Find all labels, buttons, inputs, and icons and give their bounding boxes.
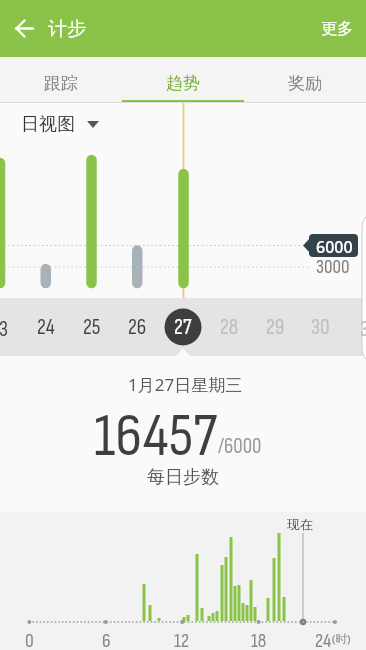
- staticText: 每日步数: [147, 466, 219, 489]
- staticText: 趋势: [166, 73, 200, 94]
- staticText: 3: [0, 317, 8, 339]
- staticText: 25: [83, 315, 101, 341]
- staticText: 3: [360, 317, 366, 339]
- staticText: 更多: [321, 19, 353, 39]
- button[interactable]: 跟踪: [0, 57, 122, 103]
- staticText: 24: [37, 315, 55, 341]
- staticText: 30: [311, 315, 330, 341]
- staticText: 27: [174, 315, 192, 341]
- staticText: 18: [251, 629, 267, 649]
- button[interactable]: 29: [255, 308, 295, 348]
- staticText: 12: [174, 629, 190, 649]
- button[interactable]: 30: [300, 308, 340, 348]
- button[interactable]: 日视图: [11, 107, 109, 142]
- staticText: 16457: [94, 400, 218, 473]
- staticText: 奖励: [288, 73, 322, 94]
- staticText: (时): [332, 631, 351, 647]
- button[interactable]: 趋势: [122, 57, 244, 103]
- staticText: 0: [25, 629, 34, 649]
- staticText: 24: [315, 629, 332, 649]
- button[interactable]: [0, 0, 48, 57]
- staticText: 29: [266, 315, 285, 341]
- button[interactable]: 更多: [308, 0, 366, 57]
- staticText: 6000: [316, 236, 353, 256]
- button[interactable]: 25: [72, 308, 112, 348]
- staticText: 现在: [287, 516, 313, 532]
- staticText: /6000: [218, 434, 262, 459]
- button[interactable]: 27: [163, 308, 203, 348]
- staticText: 28: [220, 315, 239, 341]
- staticText: 1月27日星期三: [128, 373, 243, 396]
- staticText: 26: [128, 315, 147, 341]
- button[interactable]: 24: [26, 308, 66, 348]
- staticText: 3000: [316, 256, 350, 276]
- staticText: 计步: [48, 17, 86, 41]
- staticText: 6: [102, 629, 111, 649]
- staticText: 跟踪: [44, 73, 78, 94]
- button[interactable]: 28: [209, 308, 249, 348]
- button[interactable]: 26: [117, 308, 157, 348]
- staticText: 日视图: [21, 113, 75, 136]
- button[interactable]: 奖励: [244, 57, 366, 103]
